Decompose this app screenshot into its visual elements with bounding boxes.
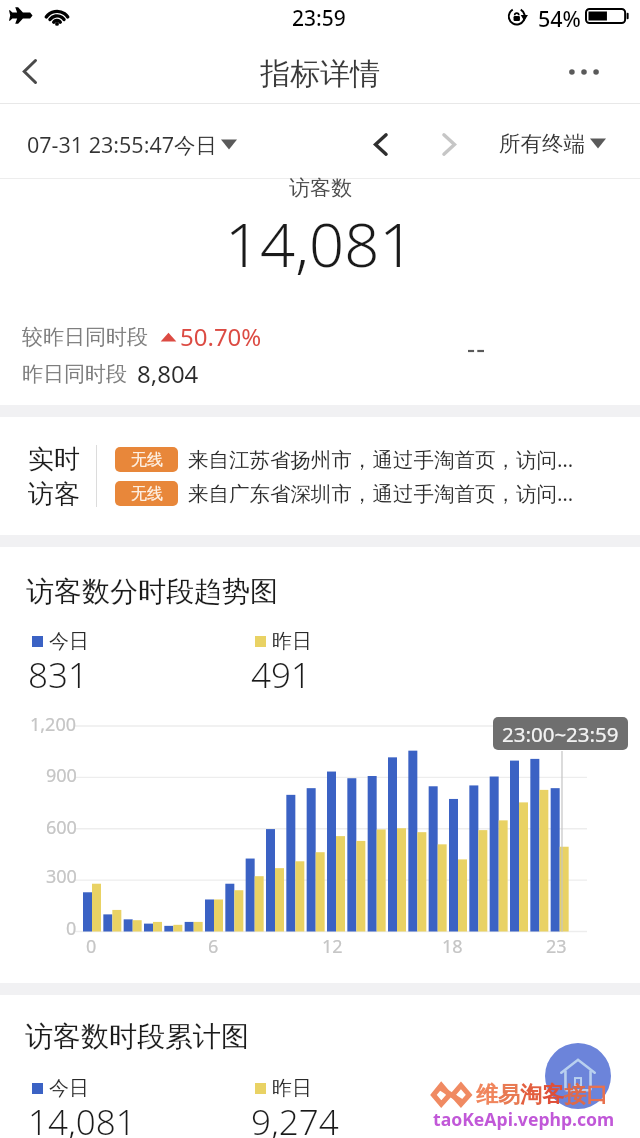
- staticText: 900: [46, 763, 77, 788]
- staticText: 昨日: [272, 629, 312, 654]
- button[interactable]: 所有终端: [499, 130, 606, 157]
- staticText: 指标详情: [260, 55, 380, 93]
- button[interactable]: Back: [2, 43, 58, 99]
- staticText: 昨日: [272, 1076, 312, 1101]
- staticText: 所有终端: [499, 130, 585, 157]
- staticText: 客: [542, 1081, 564, 1109]
- staticText: 昨日同时段: [22, 361, 127, 387]
- staticText: 50.70%: [180, 320, 262, 353]
- staticText: 23: [546, 934, 567, 959]
- staticText: 9,274: [251, 1098, 339, 1138]
- staticText: 14,081: [225, 201, 415, 285]
- staticText: 0: [66, 916, 77, 941]
- staticText: 维: [476, 1081, 498, 1109]
- button[interactable]: 07-31 23:55:47今日: [27, 130, 237, 159]
- staticText: 14,081: [28, 1098, 136, 1138]
- staticText: 无线: [131, 450, 163, 470]
- staticText: 23:59: [292, 4, 346, 33]
- staticText: 8,804: [137, 357, 199, 390]
- staticText: 访客数: [289, 175, 352, 201]
- staticText: 实时: [28, 443, 80, 476]
- staticText: 访客数时段累计图: [25, 1019, 249, 1054]
- staticText: 1,200: [30, 712, 77, 737]
- staticText: 54%: [538, 4, 581, 33]
- staticText: 23:00~23:59: [502, 720, 619, 748]
- staticText: 接: [564, 1081, 586, 1109]
- staticText: 600: [46, 815, 77, 840]
- staticText: 易: [498, 1081, 520, 1109]
- staticText: 淘: [520, 1081, 542, 1109]
- staticText: 今日: [49, 629, 89, 654]
- staticText: 12: [322, 934, 343, 959]
- staticText: 07-31 23:55:47今日: [27, 130, 218, 159]
- staticText: 来自广东省深圳市，通过手淘首页，访问…: [188, 479, 574, 507]
- staticText: 口: [586, 1081, 608, 1109]
- staticText: 今日: [49, 1076, 89, 1101]
- staticText: 0: [86, 934, 97, 959]
- button[interactable]: Next day: [425, 121, 471, 167]
- button[interactable]: 无线: [115, 479, 574, 507]
- staticText: 491: [251, 651, 311, 699]
- staticText: 831: [28, 651, 88, 699]
- staticText: 访客数分时段趋势图: [26, 574, 278, 609]
- staticText: 访客: [28, 478, 80, 511]
- staticText: 来自江苏省扬州市，通过手淘首页，访问…: [188, 445, 574, 473]
- staticText: taoKeApi.vephp.com: [433, 1107, 615, 1131]
- button[interactable]: 无线: [115, 445, 574, 473]
- staticText: 18: [442, 934, 463, 959]
- staticText: 较昨日同时段: [22, 324, 148, 350]
- staticText: 无线: [131, 484, 163, 504]
- button[interactable]: Previous day: [358, 121, 404, 167]
- staticText: 300: [46, 864, 77, 889]
- button[interactable]: Home: [545, 1043, 611, 1109]
- staticText: 6: [208, 934, 219, 959]
- button[interactable]: More options: [556, 44, 612, 100]
